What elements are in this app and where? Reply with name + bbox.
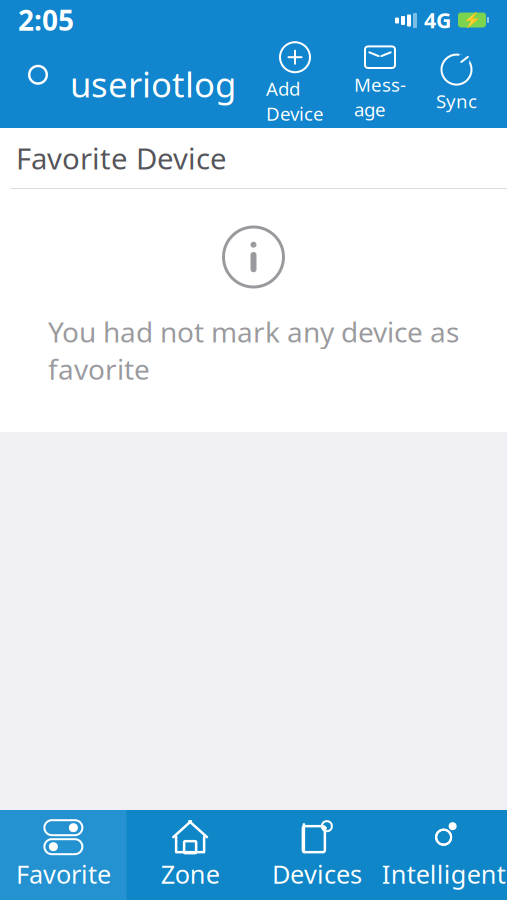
- button[interactable]: Sync: [430, 51, 483, 117]
- button[interactable]: Zone: [127, 810, 254, 900]
- button[interactable]: Message: [348, 42, 412, 126]
- staticText: useriotlog: [70, 61, 236, 107]
- staticText: 4G: [424, 6, 451, 34]
- staticText: Favorite Device: [16, 138, 227, 177]
- staticText: Sync: [436, 89, 477, 113]
- staticText: ⚡: [463, 12, 481, 28]
- staticText: Favorite: [16, 857, 111, 891]
- staticText: Message: [354, 72, 406, 122]
- button[interactable]: useriotlog: [16, 57, 236, 111]
- staticText: Add Device: [266, 76, 324, 126]
- button[interactable]: Add Device: [260, 38, 330, 130]
- button[interactable]: Favorite: [0, 810, 127, 900]
- staticText: Devices: [272, 857, 362, 891]
- staticText: Intelligent: [382, 857, 506, 891]
- button[interactable]: Devices: [253, 810, 380, 900]
- staticText: You had not mark any device as favorite: [48, 313, 459, 387]
- staticText: Zone: [161, 857, 220, 891]
- button[interactable]: Intelligent: [380, 810, 507, 900]
- staticText: 2:05: [18, 1, 74, 39]
